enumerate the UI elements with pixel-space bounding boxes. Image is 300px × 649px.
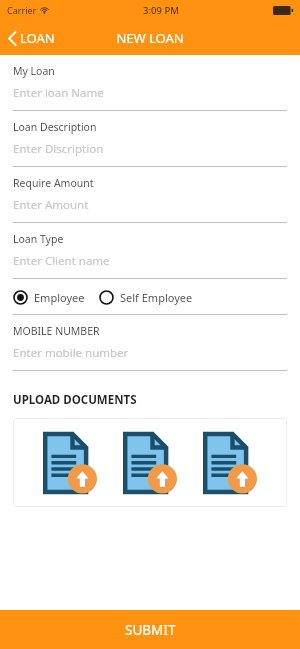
button[interactable]: SUBMIT [0,610,300,649]
button[interactable]: Upload document [39,430,101,496]
staticText: Employee [34,290,85,305]
other: Back [8,31,17,46]
button[interactable]: Upload document [119,430,181,496]
button[interactable]: Require Amount [13,167,287,223]
button[interactable]: Back [0,25,61,51]
staticText: SUBMIT [125,621,176,639]
staticText: NEW LOAN [116,29,184,47]
staticText: Loan Description [13,120,97,134]
staticText: Require Amount [13,176,94,190]
staticText: LOAN [20,29,55,47]
staticText: 3:09 PM [49,4,273,17]
staticText: My Loan [13,64,55,78]
staticText: MOBILE NUMBER [13,324,100,338]
staticText: Self Employee [120,290,193,305]
staticText: Enter Discription [13,141,104,157]
button[interactable]: Upload document [199,430,261,496]
button[interactable]: My Loan [13,55,287,111]
staticText: Enter mobile number [13,345,129,361]
button[interactable]: MOBILE NUMBER [13,315,287,371]
staticText: Enter Client name [13,253,110,269]
staticText: Carrier [7,4,37,16]
staticText: Enter loan Name [13,85,104,101]
staticText: Enter Amount [13,197,89,213]
button[interactable]: Loan Type [13,223,287,279]
button[interactable]: Self Employee [99,290,193,305]
button[interactable]: Loan Description [13,111,287,167]
staticText: Loan Type [13,232,64,246]
staticText: UPLOAD DOCUMENTS [13,392,137,408]
button[interactable]: Employee [13,290,85,305]
